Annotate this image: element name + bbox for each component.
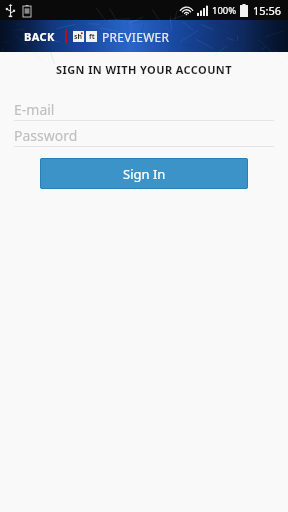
button[interactable]: Password <box>14 125 274 147</box>
staticText: 100% <box>212 4 237 17</box>
staticText: BACK <box>24 29 55 44</box>
staticText: PREVIEWER <box>102 29 170 45</box>
staticText: sh <box>74 32 83 42</box>
staticText: ft <box>89 32 95 42</box>
button[interactable]: E-mail <box>14 99 274 121</box>
staticText: Sign In <box>123 165 166 183</box>
button[interactable]: Sign In <box>40 158 248 189</box>
button[interactable]: BACK <box>22 25 57 48</box>
staticText: SIGN IN WITH YOUR ACCOUNT <box>56 62 232 77</box>
staticText: Password <box>14 126 78 145</box>
staticText: 15:56 <box>253 3 282 18</box>
staticText: E-mail <box>14 100 55 119</box>
